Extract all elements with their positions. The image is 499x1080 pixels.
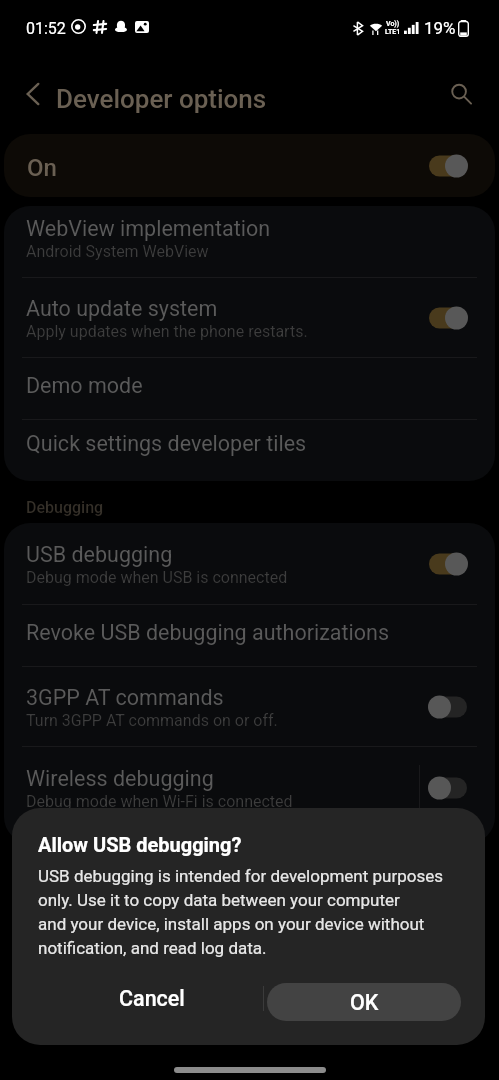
staticText: LTE1 (385, 28, 401, 36)
button[interactable]: OK (267, 983, 461, 1021)
button[interactable]: 3GPP AT commands (4, 667, 495, 746)
button[interactable]: Quick settings developer tiles (4, 420, 495, 472)
button[interactable]: Wireless debugging (4, 747, 495, 828)
staticText: USB debugging (26, 542, 173, 567)
staticText: Vo)) (386, 20, 400, 28)
staticText: USB debugging is intended for developmen… (38, 866, 485, 958)
staticText: Debug mode when USB is connected (26, 568, 288, 587)
button[interactable]: Toggle Auto update system (428, 306, 468, 330)
staticText: Revoke USB debugging authorizations (26, 620, 390, 645)
staticText: Turn 3GPP AT commands on or off. (26, 711, 278, 730)
staticText: Developer options (56, 84, 267, 114)
button[interactable]: USB debugging (4, 523, 495, 604)
staticText: Quick settings developer tiles (26, 431, 307, 456)
staticText: WebView implementation (26, 216, 271, 241)
button[interactable]: Back (16, 77, 50, 111)
staticText: Wireless debugging (26, 766, 214, 791)
button[interactable]: Revoke USB debugging authorizations (4, 605, 495, 666)
button[interactable]: Auto update system (4, 278, 495, 357)
button[interactable]: Toggle 3GPP AT commands (428, 695, 468, 719)
staticText: 19% (424, 18, 456, 38)
staticText: Demo mode (26, 373, 143, 398)
staticText: Debug mode when Wi-Fi is connected (26, 792, 293, 811)
button[interactable]: Toggle Wireless debugging (428, 776, 468, 800)
button[interactable]: On (4, 134, 495, 197)
staticText: Apply updates when the phone restarts. (26, 322, 308, 341)
staticText: 3GPP AT commands (26, 685, 224, 710)
button[interactable]: Cancel (30, 974, 274, 1022)
staticText: On (27, 154, 57, 182)
staticText: OK (350, 990, 379, 1015)
staticText: Android System WebView (26, 242, 209, 261)
staticText: Debugging (26, 498, 104, 517)
button[interactable]: Search (444, 77, 478, 111)
staticText: Allow USB debugging? (38, 833, 242, 856)
button[interactable]: Toggle USB debugging (428, 552, 468, 576)
staticText: Cancel (119, 986, 185, 1011)
button[interactable]: Demo mode (4, 358, 495, 419)
staticText: 01:52 (26, 19, 66, 38)
staticText: Auto update system (26, 296, 218, 321)
button[interactable]: WebView implementation (4, 206, 495, 277)
